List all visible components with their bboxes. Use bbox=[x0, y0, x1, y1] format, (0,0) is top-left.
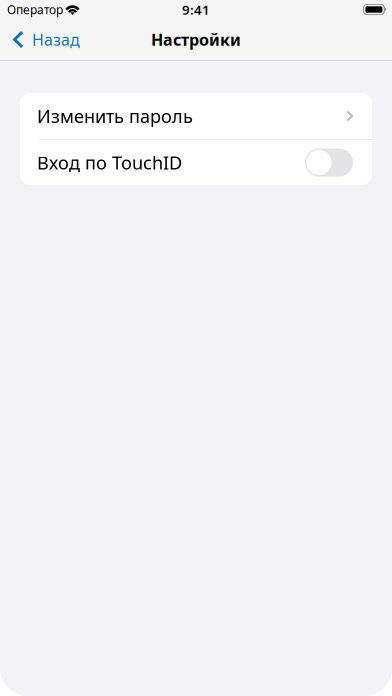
button[interactable]: Назад bbox=[0, 19, 90, 60]
button[interactable]: Вход по TouchID bbox=[20, 140, 372, 185]
staticText: Назад bbox=[32, 29, 80, 50]
staticText: Вход по TouchID bbox=[37, 150, 182, 175]
staticText: Назад bbox=[32, 29, 80, 50]
staticText: 9:41 bbox=[182, 0, 210, 19]
button[interactable]: Изменить пароль bbox=[20, 93, 372, 139]
staticText: Изменить пароль bbox=[37, 104, 193, 128]
staticText: Оператор bbox=[7, 1, 63, 18]
staticText: 9:41 bbox=[182, 0, 210, 19]
staticText: Настройки bbox=[151, 29, 241, 50]
staticText: Оператор bbox=[7, 1, 63, 18]
staticText: Настройки bbox=[151, 29, 241, 50]
button[interactable]: Назад bbox=[0, 19, 90, 60]
